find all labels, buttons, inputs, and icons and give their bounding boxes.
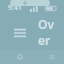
- button[interactable]: Open navigation menu: [10, 23, 30, 43]
- button[interactable]: Create new item: [10, 0, 50, 6]
- staticText: Overview: [38, 16, 54, 50]
- staticText: 9:41: [8, 3, 22, 13]
- button[interactable]: Lists: [40, 50, 64, 64]
- button[interactable]: Home: [0, 50, 40, 64]
